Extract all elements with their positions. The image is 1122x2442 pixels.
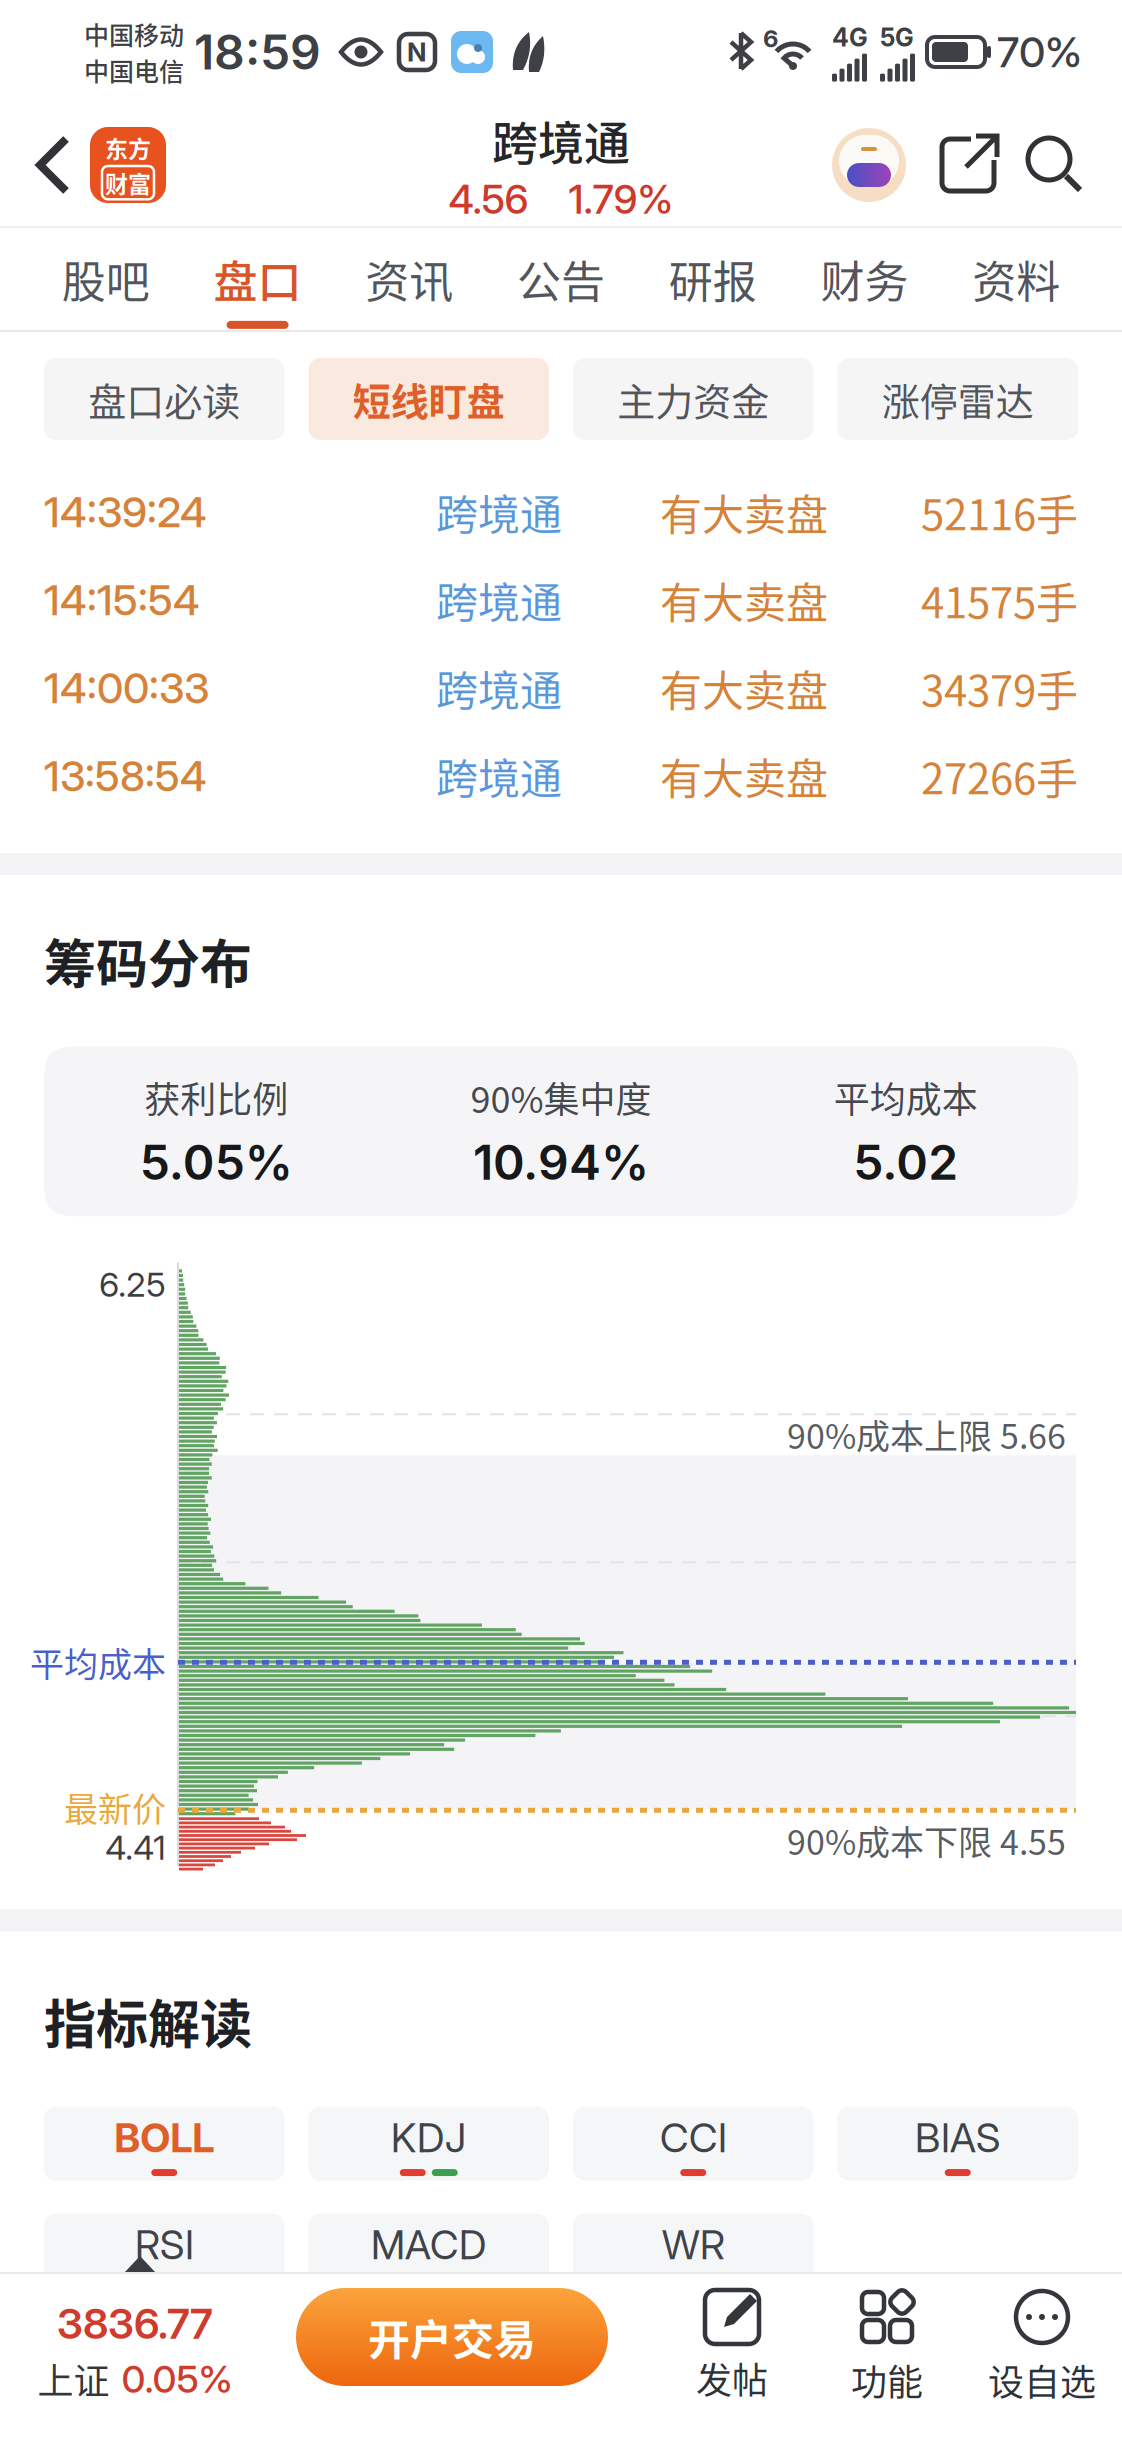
staticText: 跨境通 bbox=[436, 658, 562, 718]
button[interactable]: MACD bbox=[308, 2214, 549, 2288]
staticText: WR bbox=[662, 2220, 725, 2269]
button[interactable]: KDJ bbox=[308, 2107, 549, 2181]
button[interactable]: 分享 bbox=[906, 137, 996, 193]
button[interactable]: 研报 bbox=[637, 247, 789, 329]
button[interactable]: CCI bbox=[573, 2107, 813, 2181]
button[interactable]: RSI bbox=[44, 2214, 284, 2288]
staticText: 最新价 bbox=[64, 1783, 166, 1832]
staticText: 股吧 bbox=[62, 247, 150, 311]
staticText: 90%成本上限 5.66 bbox=[787, 1410, 1066, 1459]
staticText: 10.94% bbox=[473, 1133, 649, 1191]
staticText: 东方 bbox=[105, 131, 151, 164]
button[interactable]: 智能助手 bbox=[832, 128, 906, 202]
staticText: 涨停雷达 bbox=[882, 371, 1034, 426]
staticText: 有大卖盘 bbox=[660, 658, 828, 718]
staticText: 0.05% bbox=[121, 2356, 232, 2402]
staticText: 盘口 bbox=[214, 247, 302, 311]
button[interactable]: 设自选 bbox=[962, 2274, 1122, 2406]
staticText: 跨境通 bbox=[436, 570, 562, 630]
staticText: 获利比例 bbox=[144, 1071, 288, 1123]
staticText: 指标解读 bbox=[44, 1983, 252, 2059]
staticText: 跨境通 bbox=[436, 746, 562, 806]
button[interactable]: 3836.77 bbox=[0, 2274, 270, 2405]
staticText: 资料 bbox=[972, 247, 1060, 311]
staticText: 盘口必读 bbox=[88, 371, 240, 426]
staticText: BOLL bbox=[114, 2113, 214, 2162]
staticText: 5G bbox=[880, 22, 914, 53]
staticText: 上证 bbox=[37, 2353, 109, 2405]
staticText: 14:00:33 bbox=[44, 663, 209, 713]
staticText: 4G bbox=[832, 22, 868, 53]
staticText: 跨境通 bbox=[492, 106, 630, 173]
button[interactable]: 14:00:33 bbox=[44, 644, 1078, 732]
button[interactable]: 盘口 bbox=[182, 247, 333, 329]
staticText: 1.79% bbox=[568, 175, 673, 223]
staticText: 开户交易 bbox=[368, 2307, 536, 2367]
staticText: 中国移动 bbox=[84, 16, 184, 52]
staticText: 70% bbox=[997, 27, 1082, 77]
staticText: 5.05% bbox=[140, 1133, 293, 1191]
staticText: 6.25 bbox=[99, 1264, 166, 1305]
staticText: 18:59 bbox=[194, 23, 321, 81]
staticText: BIAS bbox=[915, 2113, 1001, 2162]
staticText: 筹码分布 bbox=[44, 923, 252, 998]
staticText: 27266手 bbox=[921, 746, 1078, 806]
staticText: 资讯 bbox=[365, 247, 453, 311]
staticText: N bbox=[407, 36, 427, 68]
staticText: 平均成本 bbox=[834, 1071, 978, 1123]
button[interactable]: 搜索 bbox=[996, 138, 1122, 192]
button[interactable]: 资料 bbox=[940, 247, 1092, 329]
staticText: 有大卖盘 bbox=[660, 746, 828, 806]
staticText: 有大卖盘 bbox=[660, 482, 828, 542]
staticText: 平均成本 bbox=[30, 1638, 166, 1687]
staticText: 5.02 bbox=[853, 1133, 958, 1191]
button[interactable]: 公告 bbox=[485, 247, 637, 329]
staticText: 短线盯盘 bbox=[353, 371, 505, 426]
button[interactable]: 返回 bbox=[0, 135, 90, 195]
staticText: 52116手 bbox=[921, 482, 1078, 542]
staticText: 3836.77 bbox=[57, 2298, 213, 2349]
staticText: 90%集中度 bbox=[470, 1071, 651, 1123]
staticText: 有大卖盘 bbox=[660, 570, 828, 630]
staticText: 4.41 bbox=[105, 1827, 166, 1868]
button[interactable]: 14:39:24 bbox=[44, 468, 1078, 556]
staticText: CCI bbox=[660, 2113, 727, 2162]
staticText: 财务 bbox=[820, 247, 908, 311]
button[interactable]: 资讯 bbox=[333, 247, 485, 329]
staticText: 财富 bbox=[105, 166, 151, 199]
staticText: 34379手 bbox=[921, 658, 1078, 718]
button[interactable]: 盘口必读 bbox=[44, 358, 284, 440]
button[interactable]: 涨停雷达 bbox=[837, 358, 1078, 440]
staticText: 设自选 bbox=[988, 2354, 1096, 2406]
button[interactable]: 开户交易 bbox=[270, 2274, 608, 2386]
button[interactable]: 股吧 bbox=[30, 247, 182, 329]
staticText: 14:39:24 bbox=[44, 487, 207, 537]
staticText: 功能 bbox=[851, 2354, 923, 2406]
staticText: 6 bbox=[763, 24, 778, 53]
button[interactable]: 短线盯盘 bbox=[308, 358, 549, 440]
button[interactable]: 发帖 bbox=[657, 2274, 807, 2404]
staticText: 发帖 bbox=[696, 2352, 768, 2404]
staticText: 跨境通 bbox=[436, 482, 562, 542]
staticText: 4.56 bbox=[448, 175, 528, 223]
staticText: RSI bbox=[135, 2220, 194, 2269]
button[interactable]: 主力资金 bbox=[573, 358, 813, 440]
staticText: MACD bbox=[371, 2220, 487, 2269]
staticText: 90%成本下限 4.55 bbox=[787, 1816, 1066, 1865]
button[interactable]: 14:15:54 bbox=[44, 556, 1078, 644]
staticText: 公告 bbox=[517, 247, 605, 311]
staticText: 13:58:54 bbox=[44, 751, 207, 801]
staticText: 研报 bbox=[669, 247, 757, 311]
staticText: 41575手 bbox=[921, 570, 1078, 630]
button[interactable]: BOLL bbox=[44, 2107, 284, 2181]
button[interactable]: 功能 bbox=[807, 2274, 962, 2406]
button[interactable]: BIAS bbox=[837, 2107, 1078, 2181]
button[interactable]: WR bbox=[573, 2214, 813, 2288]
button[interactable]: 财务 bbox=[789, 247, 940, 329]
staticText: 14:15:54 bbox=[44, 575, 200, 625]
staticText: 中国电信 bbox=[84, 52, 184, 88]
button[interactable]: 东方财富 bbox=[90, 127, 166, 203]
staticText: KDJ bbox=[391, 2113, 467, 2162]
staticText: 主力资金 bbox=[617, 371, 769, 426]
button[interactable]: 13:58:54 bbox=[44, 732, 1078, 820]
